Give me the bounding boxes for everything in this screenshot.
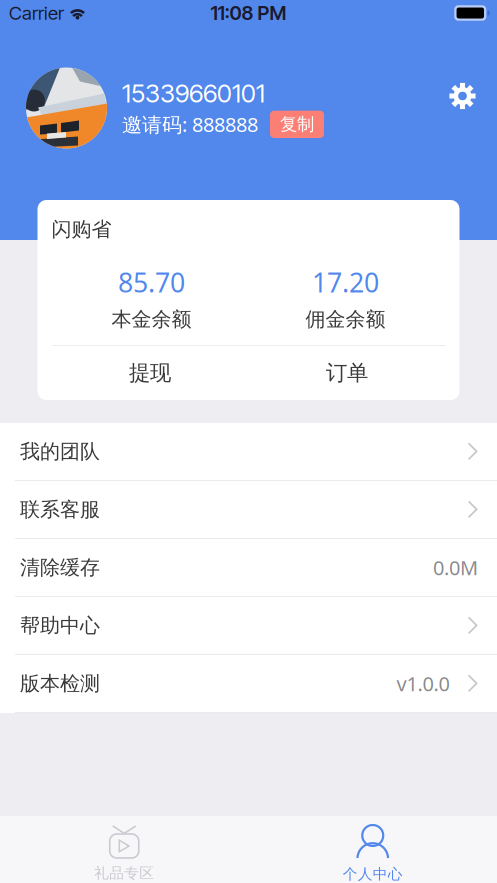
button[interactable]: 订单 [248,346,445,400]
staticText: 礼品专区 [94,864,154,882]
staticText: Carrier [9,2,64,24]
staticText: 15339660101 [122,78,265,109]
button[interactable]: 我的团队 [0,423,497,481]
staticText: 清除缓存 [20,555,100,580]
staticText: 提现 [129,360,171,386]
button[interactable]: Settings [449,82,476,109]
button[interactable]: 提现 [51,346,248,400]
staticText: 帮助中心 [20,613,100,638]
staticText: 17.20 [312,265,379,300]
staticText: 闪购省 [51,217,111,242]
button[interactable]: 帮助中心 [0,597,497,655]
staticText: 0.0M [433,554,478,581]
button[interactable]: 版本检测 [0,655,497,713]
staticText: 复制 [280,114,314,135]
staticText: 版本检测 [20,671,100,696]
staticText: 佣金余额 [305,307,385,332]
staticText: 本金余额 [111,307,191,332]
button[interactable]: 礼品专区 [0,816,248,883]
staticText: v1.0.0 [396,670,449,697]
staticText: 我的团队 [20,439,100,464]
staticText: 85.70 [118,265,185,300]
staticText: 订单 [326,360,368,386]
staticText: 11:08 PM [210,1,286,25]
staticText: 邀请码: 888888 [122,111,258,138]
button[interactable]: 清除缓存 [0,539,497,597]
button[interactable]: 个人中心 [248,816,497,883]
button[interactable]: 复制 [270,111,324,138]
button[interactable]: 联系客服 [0,481,497,539]
staticText: 个人中心 [343,865,403,883]
staticText: 联系客服 [20,497,100,522]
